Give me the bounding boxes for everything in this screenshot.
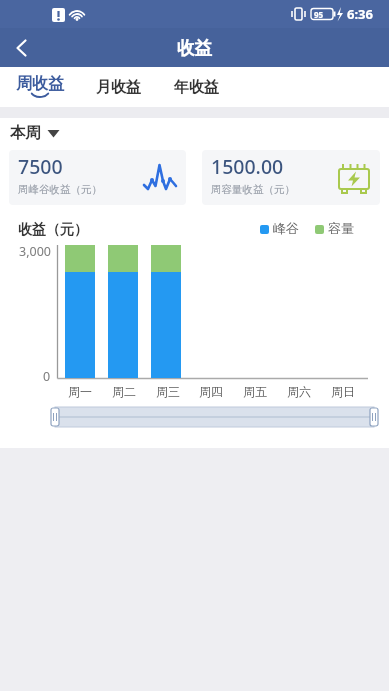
staticText: 周一 [68,384,92,399]
staticText: 周日 [331,384,355,399]
button[interactable]: 7500 [9,150,186,205]
staticText: 周五 [243,384,267,399]
button[interactable]: 1500.00 [202,150,380,205]
staticText: 周四 [199,384,223,399]
staticText: 周二 [112,384,136,399]
staticText: 7500 [18,153,63,180]
button[interactable]: 周收益 [8,67,72,107]
staticText: 收益（元） [18,221,88,239]
button[interactable] [4,30,40,66]
staticText: 收益 [177,37,212,59]
staticText: 周容量收益（元） [211,183,295,196]
staticText: 3,000 [19,243,51,260]
staticText: 周三 [156,384,180,399]
staticText: 峰谷 [273,220,299,236]
staticText: 周六 [287,384,311,399]
staticText: 1500.00 [211,153,284,180]
staticText: 本周 [10,123,41,143]
button[interactable]: 年收益 [168,67,225,107]
staticText: 周峰谷收益（元） [18,183,102,196]
button[interactable]: 月收益 [90,67,147,107]
staticText: 周收益 [16,74,64,94]
button[interactable]: 本周 [10,123,60,143]
staticText: 0 [43,368,51,385]
staticText: 容量 [328,220,354,236]
staticText: 95 [314,9,324,20]
staticText: 年收益 [174,78,219,97]
staticText: 月收益 [96,78,141,97]
staticText: 6:36 [347,5,373,23]
